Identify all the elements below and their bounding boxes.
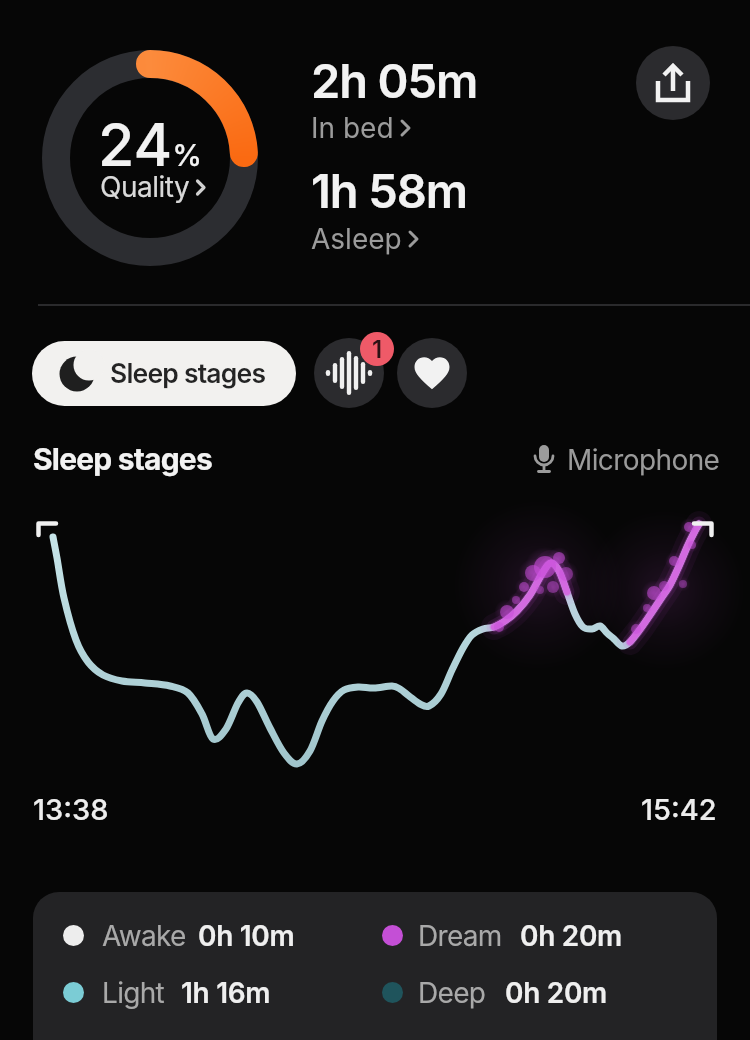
- staticText: Sleep stages: [33, 441, 212, 477]
- staticText: 13:38: [33, 792, 109, 827]
- staticText: 15:42: [641, 792, 717, 827]
- staticText: Light: [102, 976, 165, 1010]
- staticText: 1h 58m: [311, 162, 467, 219]
- button[interactable]: In bed: [311, 111, 411, 145]
- button[interactable]: [314, 338, 384, 408]
- staticText: 24%: [98, 109, 202, 180]
- button[interactable]: Asleep: [311, 222, 419, 256]
- staticText: In bed: [311, 111, 394, 145]
- button[interactable]: [636, 46, 710, 120]
- button[interactable]: [397, 338, 467, 408]
- staticText: Quality: [100, 170, 190, 204]
- button[interactable]: Microphone: [453, 440, 720, 480]
- staticText: 1: [372, 335, 383, 364]
- button[interactable]: Sleep stages: [32, 341, 296, 406]
- staticText: 0h 20m: [505, 976, 607, 1010]
- staticText: 0h 20m: [520, 919, 622, 953]
- button[interactable]: 24%: [42, 50, 258, 266]
- staticText: 2h 05m: [311, 52, 478, 109]
- staticText: Deep: [418, 976, 486, 1010]
- staticText: 0h 10m: [198, 919, 295, 953]
- staticText: Awake: [102, 919, 186, 953]
- staticText: Microphone: [567, 443, 720, 477]
- staticText: Dream: [418, 919, 502, 953]
- staticText: Asleep: [311, 222, 402, 256]
- staticText: Sleep stages: [110, 357, 266, 389]
- staticText: 1h 16m: [181, 976, 271, 1010]
